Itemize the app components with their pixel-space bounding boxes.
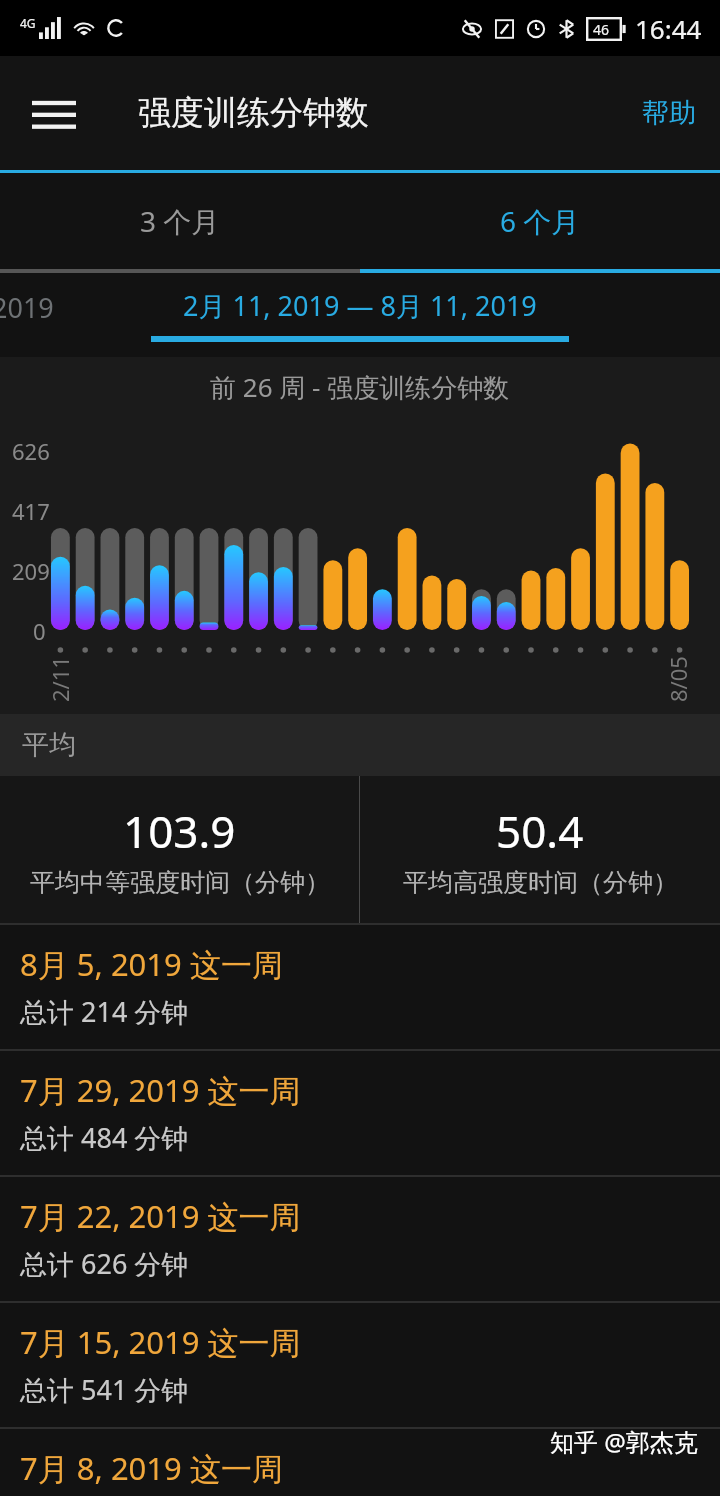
staticText: 7月 22, 2019 这一周 xyxy=(20,1195,301,1237)
button[interactable]: 帮助 xyxy=(618,76,720,150)
staticText: 2019 xyxy=(0,289,54,326)
staticText: 7月 29, 2019 这一周 xyxy=(20,1069,301,1111)
button[interactable]: 50.4 xyxy=(360,776,720,923)
staticText: 0 xyxy=(33,616,46,646)
button[interactable]: 6 个月 xyxy=(360,173,720,269)
staticText: 417 xyxy=(12,496,50,526)
staticText: 209 xyxy=(12,556,50,586)
staticText: 2/11 xyxy=(45,656,75,702)
staticText: 3 个月 xyxy=(140,202,220,240)
button[interactable]: 7月 8, 2019 这一周 xyxy=(0,1429,720,1496)
staticText: 总计 626 分钟 xyxy=(20,1245,189,1282)
staticText: 2月 11, 2019 — 8月 11, 2019 xyxy=(183,287,537,324)
button[interactable]: 菜单 xyxy=(18,77,90,149)
staticText: 总计 484 分钟 xyxy=(20,1119,189,1156)
staticText: 7月 15, 2019 这一周 xyxy=(20,1321,301,1363)
staticText: 50.4 xyxy=(496,801,584,861)
staticText: 46 xyxy=(593,20,610,39)
staticText: 平均 xyxy=(22,728,76,762)
staticText: 103.9 xyxy=(123,801,236,861)
staticText: 16:44 xyxy=(635,11,702,46)
staticText: 8/05 xyxy=(663,656,693,702)
button[interactable]: 103.9 xyxy=(0,776,359,923)
staticText: 平均中等强度时间（分钟） xyxy=(30,867,330,898)
staticText: 6 个月 xyxy=(500,202,580,240)
button[interactable]: 8月 5, 2019 这一周 xyxy=(0,925,720,1049)
button[interactable]: 7月 15, 2019 这一周 xyxy=(0,1303,720,1427)
staticText: 前 26 周 - 强度训练分钟数 xyxy=(210,369,510,405)
staticText: 总计 541 分钟 xyxy=(20,1371,189,1408)
staticText: 强度训练分钟数 xyxy=(138,92,369,134)
staticText: 4G xyxy=(20,15,36,31)
staticText: 帮助 xyxy=(642,96,696,130)
staticText: 8月 5, 2019 这一周 xyxy=(20,943,283,985)
staticText: 7月 8, 2019 这一周 xyxy=(20,1447,283,1489)
staticText: 平均高强度时间（分钟） xyxy=(403,867,678,898)
staticText: 626 xyxy=(12,436,50,466)
staticText: 知乎 @郭杰克 xyxy=(550,1425,698,1458)
button[interactable]: 7月 22, 2019 这一周 xyxy=(0,1177,720,1301)
button[interactable]: 3 个月 xyxy=(0,173,360,269)
staticText: 总计 214 分钟 xyxy=(20,993,189,1030)
button[interactable]: 7月 29, 2019 这一周 xyxy=(0,1051,720,1175)
